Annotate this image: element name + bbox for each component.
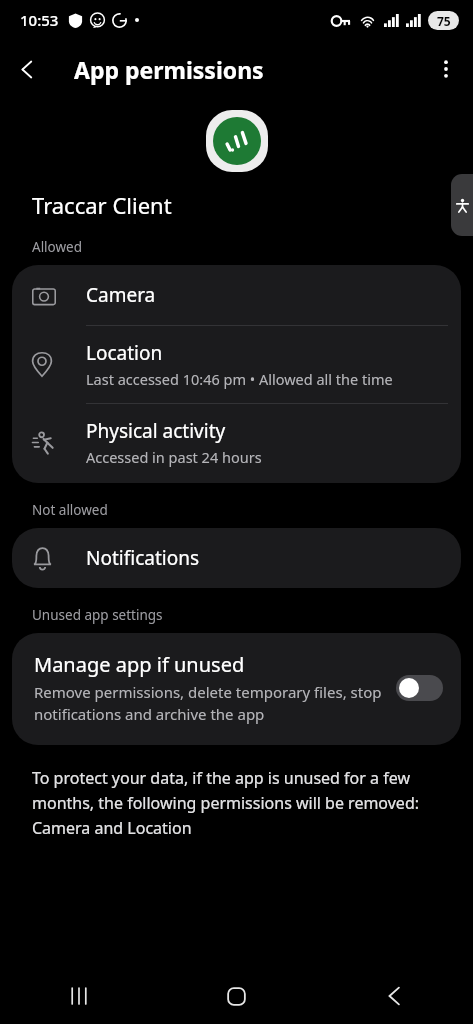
button[interactable]: Physical activity [12,404,461,483]
staticText: 75 [437,13,451,29]
button[interactable]: Accessibility menu [451,174,473,236]
button[interactable]: Manage app if unused toggle [396,675,443,701]
staticText: Physical activity [86,418,226,444]
button[interactable]: Location [12,326,461,403]
staticText: Traccar Client [32,190,172,220]
staticText: App permissions [74,54,264,85]
button[interactable]: Camera [12,265,461,325]
button[interactable]: Back [0,42,54,96]
button[interactable]: Recents [0,968,157,1024]
staticText: Location [86,340,163,366]
staticText: Unused app settings [32,606,163,624]
staticText: Not allowed [32,501,108,519]
button[interactable]: Notifications [12,528,461,588]
button[interactable]: Home [157,968,315,1024]
staticText: Allowed [32,238,83,256]
staticText: 10:53 [20,10,59,30]
staticText: Notifications [86,545,200,571]
staticText: Remove permissions, delete temporary fil… [34,682,386,725]
staticText: To protect your data, if the app is unus… [32,767,441,838]
button[interactable]: More options [419,42,473,96]
staticText: Accessed in past 24 hours [86,447,262,467]
staticText: Manage app if unused [34,651,245,678]
staticText: Camera [86,282,156,308]
button[interactable]: Manage app if unused [12,633,461,745]
button[interactable]: Back [315,968,473,1024]
staticText: Last accessed 10:46 pm • Allowed all the… [86,369,393,389]
